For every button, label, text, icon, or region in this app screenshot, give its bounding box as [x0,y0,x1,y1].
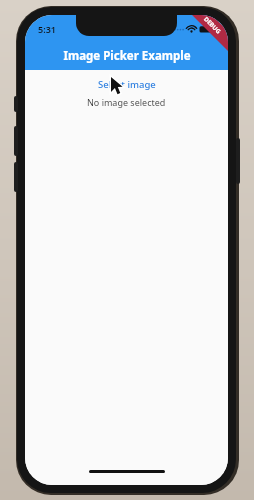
other: Debug banner [176,15,228,67]
button[interactable]: Select image [88,76,166,93]
staticText: Select image [98,78,156,91]
staticText: Image Picker Example [63,48,191,64]
staticText: No image selected [87,96,166,108]
staticText: 5:31 [38,23,56,35]
